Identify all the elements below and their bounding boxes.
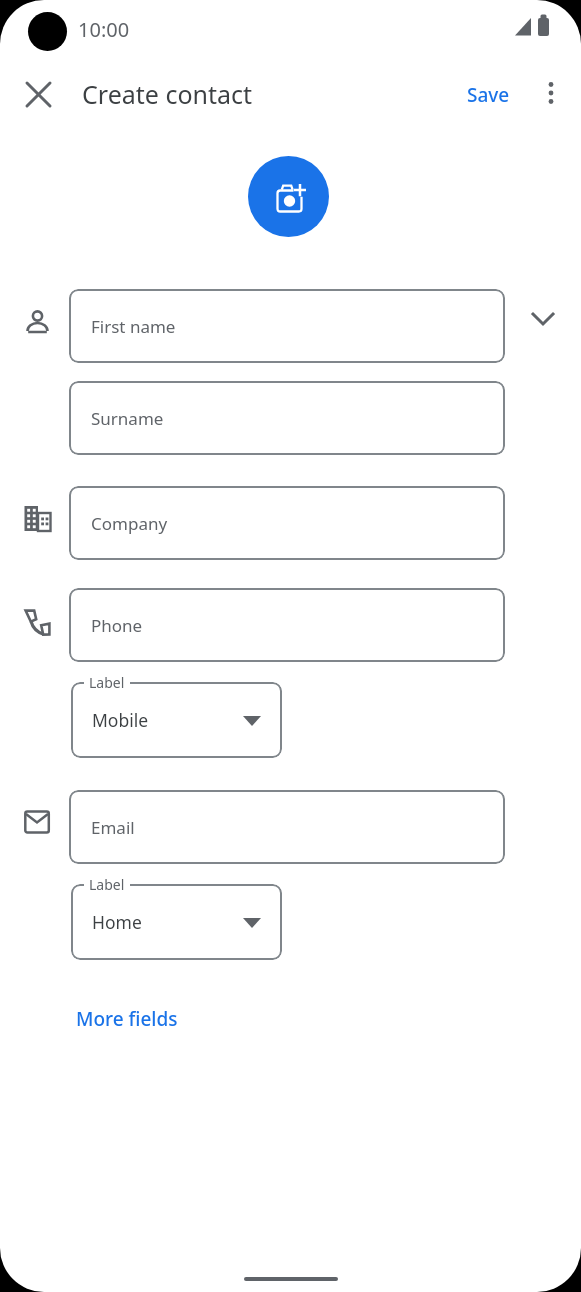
staticText: Company	[91, 512, 168, 535]
staticText: Home	[92, 910, 142, 934]
staticText: Phone	[91, 614, 143, 637]
button[interactable]	[527, 303, 559, 335]
staticText: 10:00	[78, 16, 130, 43]
button[interactable]: Phone	[69, 588, 505, 662]
button[interactable]: Company	[69, 486, 505, 560]
staticText: Label	[89, 673, 125, 692]
button[interactable]: Save	[459, 80, 518, 110]
button[interactable]: First name	[69, 289, 505, 363]
staticText: Surname	[91, 407, 164, 430]
button[interactable]: Mobile	[71, 682, 282, 758]
button[interactable]: More fields	[66, 998, 188, 1040]
button[interactable]	[248, 156, 329, 237]
staticText: First name	[91, 315, 176, 338]
staticText: Create contact	[82, 77, 253, 111]
button[interactable]: Email	[69, 790, 505, 864]
button[interactable]: Home	[71, 884, 282, 960]
staticText: Email	[91, 816, 135, 839]
button[interactable]: Surname	[69, 381, 505, 455]
staticText: Label	[89, 875, 125, 894]
staticText: Save	[467, 82, 510, 108]
button[interactable]	[536, 78, 566, 108]
staticText: More fields	[76, 1006, 178, 1032]
staticText: Mobile	[92, 708, 149, 732]
button[interactable]	[22, 78, 55, 111]
